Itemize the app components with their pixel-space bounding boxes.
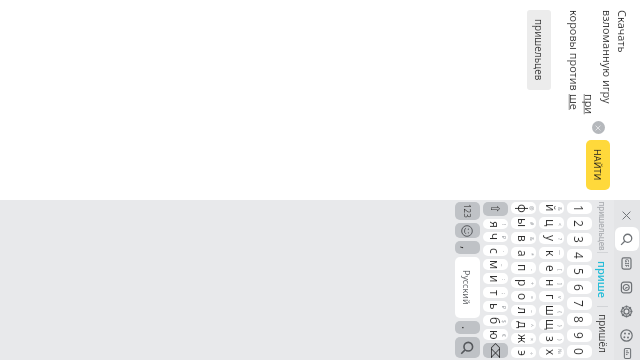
staticText: . xyxy=(459,326,475,330)
staticText: пришёл xyxy=(596,314,610,353)
staticText: ж xyxy=(515,334,531,344)
button[interactable]: Закрыть xyxy=(615,203,639,227)
button[interactable]: . xyxy=(455,321,480,334)
button[interactable]: GIF xyxy=(615,251,639,275)
staticText: л xyxy=(515,307,531,315)
staticText: 4 xyxy=(571,252,587,259)
staticText: х xyxy=(543,349,559,356)
staticText: { xyxy=(556,311,563,313)
staticText: ь xyxy=(487,303,503,310)
button[interactable]: — xyxy=(539,247,564,259)
button[interactable]: # xyxy=(511,217,536,229)
staticText: ⌫ xyxy=(488,343,502,358)
button[interactable]: ! xyxy=(483,219,508,229)
button[interactable]: пришельцев xyxy=(527,10,551,90)
button[interactable]: История xyxy=(615,275,639,299)
staticText: а xyxy=(515,250,531,257)
button[interactable]: * xyxy=(511,247,536,259)
button[interactable]: 9 xyxy=(567,329,592,342)
button[interactable]: прише xyxy=(592,253,614,306)
button[interactable]: пришёл xyxy=(592,307,614,360)
staticText: № xyxy=(556,349,563,355)
staticText: в xyxy=(515,235,531,242)
staticText: 123 xyxy=(462,204,473,218)
button[interactable]: 4 xyxy=(567,249,592,262)
button[interactable]: ⇧ xyxy=(483,202,508,216)
button[interactable]: Очистить xyxy=(592,121,605,134)
button[interactable]: ÷ xyxy=(511,347,536,358)
staticText: : xyxy=(500,279,507,281)
button[interactable]: ? xyxy=(539,232,564,244)
button[interactable]: + xyxy=(511,277,536,288)
staticText: _ xyxy=(500,264,507,267)
button[interactable]: пришельцев xyxy=(592,200,614,252)
button[interactable]: [ xyxy=(539,262,564,274)
button[interactable]: ~ xyxy=(511,305,536,316)
button[interactable]: Темы xyxy=(615,323,639,347)
button[interactable]: 3 xyxy=(567,233,592,246)
staticText: НАЙТИ xyxy=(592,149,604,181)
staticText: ~ xyxy=(528,310,535,313)
button[interactable]: Настройки xyxy=(615,299,639,323)
button[interactable]: ^ xyxy=(511,319,536,330)
staticText: 5 xyxy=(571,268,587,275)
button[interactable]: Поиск xyxy=(615,227,639,251)
staticText: прише xyxy=(595,261,610,298)
button[interactable]: ] xyxy=(539,277,564,288)
button[interactable]: 5 xyxy=(567,265,592,278)
staticText: 7 xyxy=(571,300,587,307)
staticText: ф xyxy=(515,204,531,213)
staticText: - xyxy=(528,269,535,271)
button[interactable]: ⌫ xyxy=(483,343,508,358)
staticText: с xyxy=(487,248,503,254)
button[interactable]: 123 xyxy=(455,202,480,220)
staticText: € xyxy=(500,334,507,337)
button[interactable]: < xyxy=(539,217,564,229)
staticText: ? xyxy=(556,238,563,241)
button[interactable]: , xyxy=(455,241,480,254)
button[interactable]: $ xyxy=(483,315,508,326)
staticText: ч xyxy=(487,233,503,241)
button[interactable]: { xyxy=(539,305,564,316)
button[interactable]: } xyxy=(539,319,564,330)
staticText: Русский xyxy=(461,270,473,305)
staticText: и xyxy=(487,275,503,283)
button[interactable]: € xyxy=(483,329,508,340)
staticText: пришельцев xyxy=(532,19,546,81)
staticText: з xyxy=(543,336,559,342)
button[interactable]: Эмодзи xyxy=(455,223,480,238)
button[interactable]: 7 xyxy=(567,297,592,310)
button[interactable]: × xyxy=(511,333,536,344)
button[interactable]: v xyxy=(539,291,564,302)
staticText: < xyxy=(556,223,563,226)
button[interactable]: = xyxy=(511,291,536,302)
button[interactable]: · xyxy=(483,245,508,256)
button[interactable]: _ xyxy=(483,259,508,270)
button[interactable]: & xyxy=(511,232,536,244)
button[interactable]: ₽ xyxy=(483,232,508,242)
button[interactable]: Стикеры xyxy=(615,347,639,360)
button[interactable]: Русский xyxy=(455,257,480,318)
button[interactable]: & xyxy=(539,202,564,214)
button[interactable]: 6 xyxy=(567,281,592,294)
button[interactable]: 2 xyxy=(567,217,592,230)
button[interactable]: 1 xyxy=(567,202,592,214)
staticText: = xyxy=(528,296,535,299)
button[interactable]: 8 xyxy=(567,313,592,326)
button[interactable]: ₽ xyxy=(483,301,508,312)
button[interactable]: НАЙТИ xyxy=(586,140,610,190)
staticText: # xyxy=(528,222,535,226)
staticText: * xyxy=(528,253,535,256)
button[interactable]: @ xyxy=(511,202,536,214)
staticText: 9 xyxy=(571,332,587,339)
button[interactable]: : xyxy=(483,273,508,284)
button[interactable]: ; xyxy=(483,287,508,298)
button[interactable]: Найти xyxy=(455,337,480,358)
button[interactable]: ) xyxy=(539,333,564,344)
button[interactable]: - xyxy=(511,262,536,274)
staticText: э xyxy=(515,350,531,356)
staticText: 6 xyxy=(571,284,587,291)
staticText: 2 xyxy=(571,220,587,227)
button[interactable]: № xyxy=(539,347,564,358)
button[interactable]: 0 xyxy=(567,345,592,358)
